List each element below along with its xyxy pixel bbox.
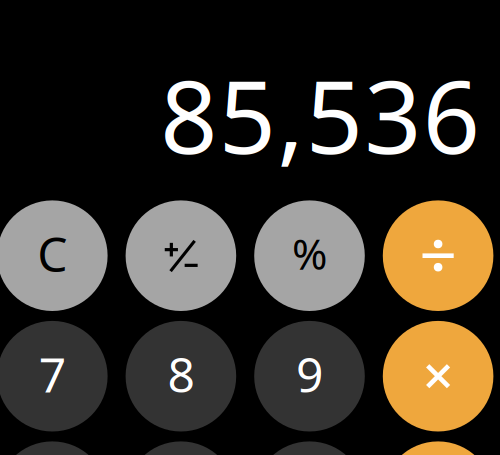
staticText: % xyxy=(292,225,327,282)
button[interactable]: 4 xyxy=(0,441,108,455)
button[interactable]: C xyxy=(0,200,108,311)
button[interactable]: 9 xyxy=(254,321,365,431)
button[interactable]: 5 xyxy=(126,441,236,455)
staticText: C xyxy=(37,221,67,285)
button[interactable]: 8 xyxy=(126,321,236,431)
button[interactable]: Plus minus xyxy=(126,200,236,311)
button[interactable]: % xyxy=(254,200,365,311)
button[interactable]: Multiply xyxy=(383,321,493,431)
staticText: 7 xyxy=(39,342,66,406)
button[interactable]: 7 xyxy=(0,321,108,431)
button[interactable]: Divide xyxy=(383,200,493,311)
staticText: 9 xyxy=(296,342,323,406)
button[interactable]: 6 xyxy=(254,441,365,455)
staticText: 8 xyxy=(167,342,194,406)
staticText: 85,536 xyxy=(160,49,480,181)
button[interactable]: Subtract xyxy=(383,441,493,455)
